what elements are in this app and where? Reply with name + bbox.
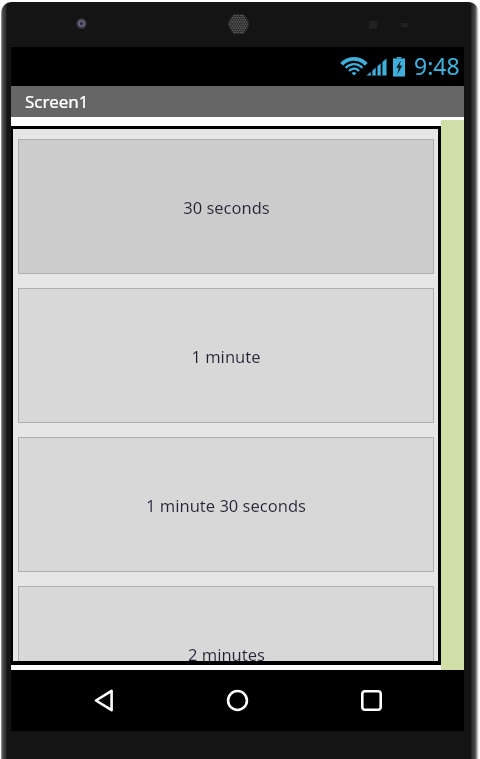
button[interactable]: 1 minute 30 seconds (19, 438, 433, 571)
staticText: Screen1 (25, 90, 89, 113)
button[interactable]: 2 minutes (19, 587, 433, 661)
button[interactable]: 30 seconds (19, 140, 433, 273)
staticText: 1 minute (191, 345, 261, 367)
button[interactable]: Screen1 (11, 86, 464, 117)
button[interactable]: Home (160, 670, 315, 731)
button[interactable]: 1 minute (19, 289, 433, 422)
staticText: 30 seconds (183, 196, 270, 218)
button[interactable]: Back (48, 670, 160, 731)
staticText: 1 minute 30 seconds (146, 494, 306, 516)
staticText: 9:48 (414, 50, 460, 81)
staticText: 2 minutes (188, 643, 265, 661)
button[interactable]: Recents (315, 670, 427, 731)
